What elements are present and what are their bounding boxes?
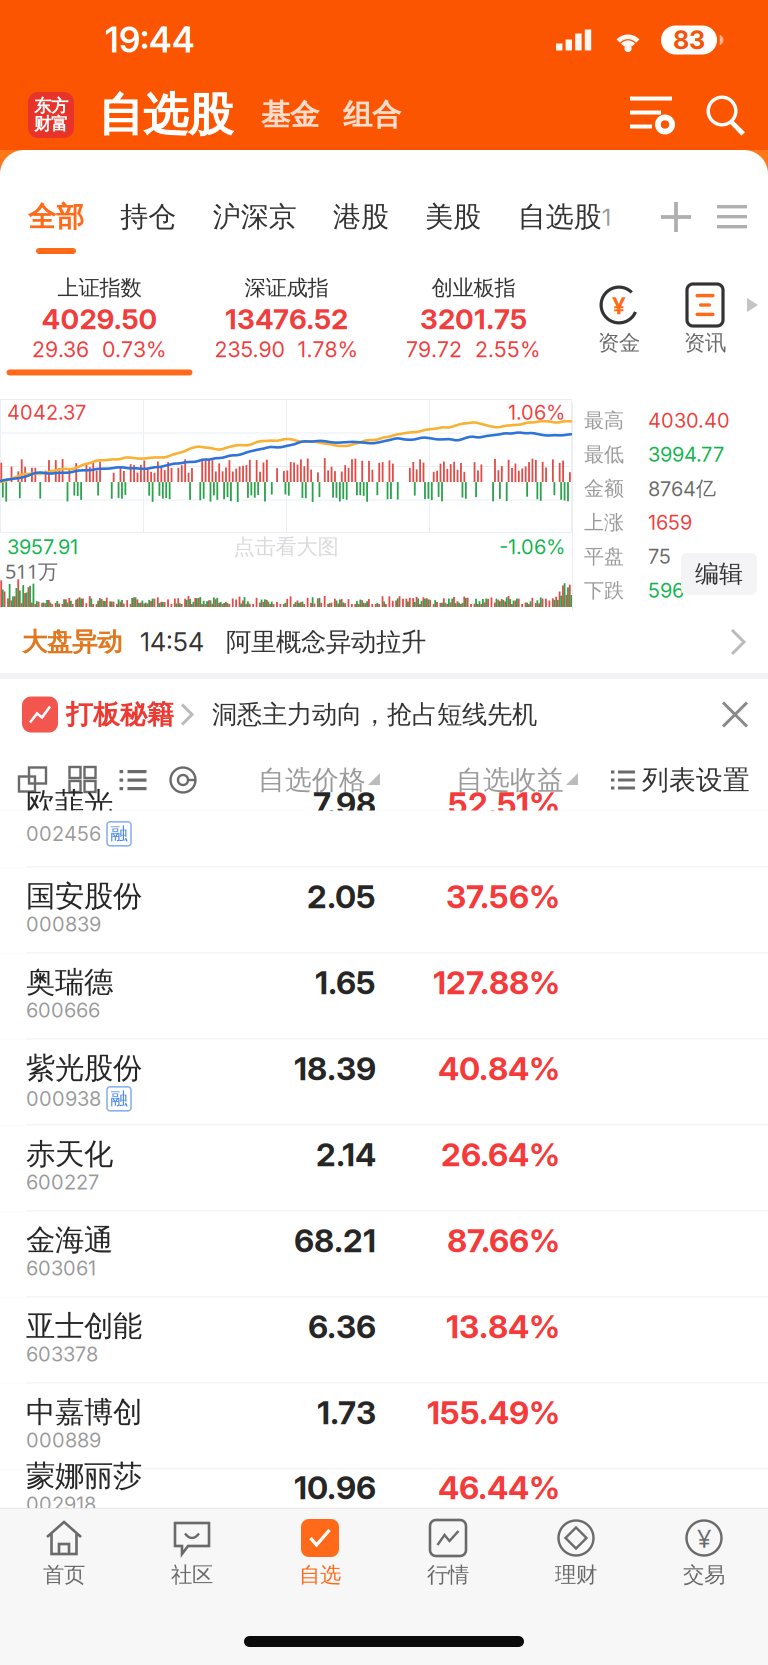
staticText: 127.88% [433, 967, 560, 998]
button[interactable]: 深证成指 [193, 260, 380, 403]
button[interactable]: 列表设置 [611, 750, 750, 810]
button[interactable]: 自选价格 [256, 750, 382, 810]
button[interactable]: Compare view [8, 750, 58, 810]
staticText: 3994.77 [648, 445, 724, 464]
button[interactable]: 蒙娜丽莎 [0, 1469, 768, 1507]
staticText: 自选价格 [258, 768, 366, 792]
button[interactable]: 全部 [28, 174, 84, 260]
button[interactable]: 奥瑞德 [0, 953, 768, 1039]
staticText: 交易 [683, 1565, 725, 1585]
staticText: 财富 [34, 116, 68, 132]
staticText: 平盘 [584, 547, 624, 566]
button[interactable]: Grid view [58, 750, 108, 810]
staticText: 国安股份 [26, 882, 142, 910]
staticText: 2.05 [307, 881, 376, 912]
staticText: 1.78% [297, 339, 358, 359]
staticText: 19:44 [105, 24, 195, 56]
button[interactable]: 资讯 [663, 260, 747, 403]
button[interactable]: 自选收益 [454, 750, 580, 810]
staticText: 全部 [28, 204, 84, 230]
staticText: 上证指数 [57, 278, 141, 298]
button[interactable]: 理财 [512, 1509, 640, 1609]
button[interactable]: List view [108, 750, 158, 810]
button[interactable]: 大盘异动 [0, 611, 768, 673]
staticText: 4042.37 [7, 403, 86, 422]
staticText: 自选股 [98, 94, 233, 136]
button[interactable]: 赤天化 [0, 1125, 768, 1211]
staticText: 2.55% [475, 339, 541, 359]
staticText: 深证成指 [244, 278, 328, 298]
staticText: 000839 [26, 915, 101, 934]
button[interactable]: 港股 [333, 174, 389, 260]
button[interactable]: Display settings [158, 750, 208, 810]
staticText: 大盘异动 [22, 630, 122, 654]
staticText: 蒙娜丽莎 [26, 1462, 142, 1490]
staticText: 235.90 [214, 339, 284, 359]
staticText: 最高 [584, 411, 624, 430]
staticText: 1 [602, 206, 612, 228]
staticText: 资金 [598, 333, 640, 353]
staticText: 金额 [584, 479, 624, 498]
staticText: 编辑 [695, 563, 743, 585]
staticText: 0.73% [102, 339, 167, 359]
staticText: 亚士创能 [26, 1312, 142, 1340]
staticText: 000938 [26, 1089, 101, 1108]
staticText: 37.56% [446, 881, 560, 912]
staticText: 511万 [5, 561, 58, 581]
staticText: 4030.40 [648, 411, 730, 430]
staticText: 紫光股份 [26, 1054, 142, 1082]
button[interactable]: 紫光股份 [0, 1039, 768, 1125]
staticText: 阿里概念异动拉升 [226, 630, 426, 654]
button[interactable]: 首页 [0, 1509, 128, 1609]
button[interactable]: Close promotion [704, 683, 766, 745]
staticText: 持仓 [120, 204, 176, 230]
button[interactable]: ¥ [640, 1509, 768, 1609]
staticText: 奥瑞德 [26, 968, 113, 996]
staticText: 理财 [555, 1565, 597, 1585]
staticText: 欧菲光 [26, 789, 113, 817]
button[interactable]: 中嘉博创 [0, 1383, 768, 1469]
button[interactable]: ¥ [577, 260, 661, 403]
button[interactable]: 编辑 [681, 553, 757, 595]
staticText: 13.84% [446, 1311, 560, 1342]
button[interactable]: Manage groups [704, 174, 760, 260]
staticText: 52.51% [448, 788, 560, 819]
staticText: 13476.52 [225, 306, 348, 332]
staticText: 组合 [343, 101, 401, 129]
button[interactable]: 自选股 [518, 174, 612, 260]
button[interactable]: 持仓 [120, 174, 176, 260]
staticText: 4029.50 [41, 306, 157, 332]
button[interactable]: Search [694, 85, 756, 145]
button[interactable]: 上证指数 [6, 260, 193, 403]
button[interactable]: 自选 [256, 1509, 384, 1609]
staticText: 列表设置 [642, 768, 750, 792]
staticText: 29.36 [32, 339, 89, 359]
staticText: 中嘉博创 [26, 1398, 142, 1426]
staticText: 最低 [584, 445, 624, 464]
staticText: 1.65 [315, 967, 376, 998]
staticText: 行情 [427, 1565, 469, 1585]
staticText: 75 [648, 547, 671, 566]
staticText: 000889 [26, 1431, 101, 1450]
button[interactable]: 社区 [128, 1509, 256, 1609]
staticText: 下跌 [584, 581, 624, 600]
staticText: 46.44% [438, 1472, 560, 1503]
staticText: 社区 [171, 1565, 213, 1585]
staticText: ¥ [612, 293, 626, 317]
button[interactable]: 美股 [425, 174, 481, 260]
button[interactable]: 国安股份 [0, 867, 768, 953]
staticText: 87.66% [447, 1225, 560, 1256]
button[interactable]: 行情 [384, 1509, 512, 1609]
button[interactable]: 金海通 [0, 1211, 768, 1297]
staticText: 10.96 [294, 1472, 376, 1503]
button[interactable]: 亚士创能 [0, 1297, 768, 1383]
button[interactable]: 沪深京 [213, 174, 297, 260]
button[interactable]: 创业板指 [380, 260, 567, 403]
staticText: 自选股 [518, 204, 602, 230]
button[interactable]: 欧菲光 [0, 810, 768, 867]
button[interactable]: Add group [648, 174, 704, 260]
button[interactable]: List settings [622, 85, 684, 145]
staticText: 7.98 [313, 788, 376, 819]
staticText: 603378 [26, 1345, 98, 1364]
staticText: 18.39 [294, 1053, 376, 1084]
